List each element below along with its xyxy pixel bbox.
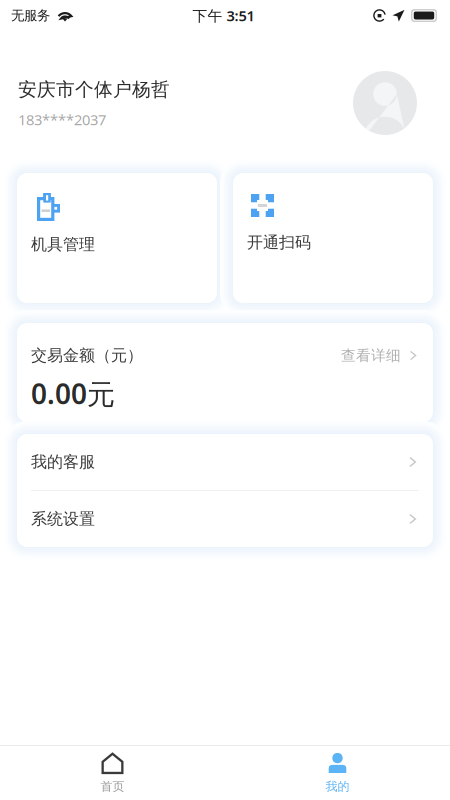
- staticText: 开通扫码: [247, 233, 311, 252]
- button[interactable]: 首页: [0, 745, 225, 800]
- button[interactable]: 查看详细: [341, 346, 419, 364]
- staticText: 安庆市个体户杨哲: [18, 78, 170, 101]
- button[interactable]: 我的客服: [17, 434, 433, 490]
- staticText: 无服务: [11, 7, 50, 24]
- button[interactable]: 开通扫码: [233, 173, 433, 303]
- staticText: 系统设置: [31, 509, 95, 529]
- staticText: 我的: [325, 779, 349, 794]
- staticText: 我的客服: [31, 452, 95, 472]
- staticText: 0.00元: [31, 375, 115, 412]
- staticText: 首页: [100, 779, 124, 794]
- staticText: 交易金额（元）: [31, 346, 143, 365]
- button[interactable]: 系统设置: [17, 491, 433, 547]
- staticText: 查看详细: [341, 346, 401, 364]
- button[interactable]: 我的: [225, 745, 450, 800]
- staticText: 机具管理: [31, 235, 95, 254]
- button[interactable]: 机具管理: [17, 173, 217, 303]
- staticText: 下午 3:51: [192, 6, 254, 25]
- staticText: 183****2037: [18, 110, 106, 129]
